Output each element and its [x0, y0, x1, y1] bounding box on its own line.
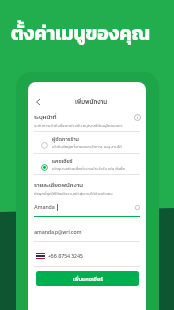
staticText: ข้อมูลนี้ถูกใช้ให้พนักงานเข้าสู่ระบบได้ด… — [34, 190, 113, 196]
staticText: ผู้จัดการร้าน — [52, 135, 79, 143]
button[interactable]: +66 8754 3245 — [36, 252, 140, 260]
staticText: เข้าดูบางส่วนเพื่อทำงานประจำวัน เช่น สั่… — [52, 165, 125, 171]
staticText: Amanda — [34, 203, 55, 211]
staticText: รายละเอียดพนักงาน — [34, 180, 84, 189]
staticText: เพิ่มพนักงาน — [32, 97, 146, 106]
button[interactable]: แคชเชียร์ — [34, 157, 140, 171]
button[interactable]: ผู้จัดการร้าน — [34, 135, 140, 149]
button[interactable]: Amanda — [34, 203, 140, 211]
button[interactable]: เพิ่มแคชเชียร์ — [36, 271, 139, 286]
staticText: amanda.p@wri.com — [34, 228, 82, 236]
staticText: ตั้งค่าเมนูของคุณ — [11, 19, 150, 47]
staticText: แคชเชียร์ — [52, 157, 73, 165]
staticText: ระบุหน้าที่ — [34, 112, 57, 121]
button[interactable]: Back — [31, 95, 45, 109]
staticText: เพิ่มแคชเชียร์ — [73, 275, 103, 283]
staticText: เข้าถึงข้อมูลทั้งหมดและจัดการ เมนู งานได… — [52, 143, 122, 149]
button[interactable]: Information — [134, 114, 141, 121]
staticText: +66 8754 3245 — [48, 252, 83, 260]
staticText: ระดับการเข้าถึงที่แตกต่างกัน อนุญาตให้เม… — [34, 122, 123, 128]
